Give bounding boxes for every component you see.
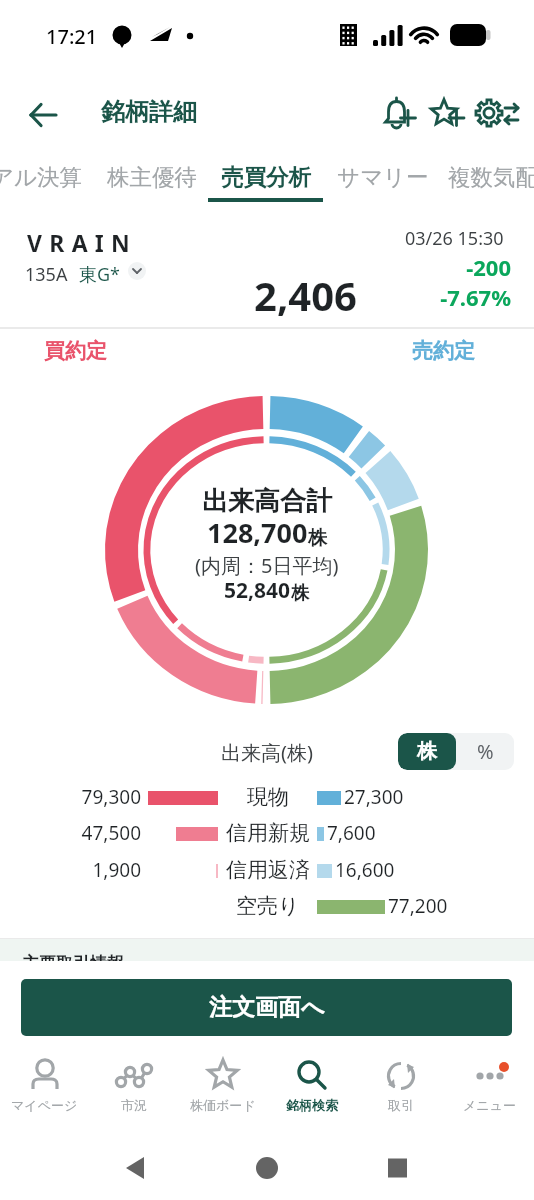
- staticText: 1,900: [30, 857, 141, 883]
- button[interactable]: 市況: [89, 1050, 178, 1135]
- staticText: 株主優待: [107, 163, 197, 191]
- button[interactable]: アル決算: [0, 150, 83, 202]
- staticText: 売買分析: [221, 163, 311, 191]
- staticText: 複数気配: [448, 163, 534, 191]
- staticText: 銘柄検索: [286, 1097, 338, 1113]
- staticText: 売約定: [412, 338, 475, 364]
- staticText: %: [477, 738, 494, 765]
- button[interactable]: Back: [20, 89, 68, 137]
- button[interactable]: 注文画面へ: [21, 979, 512, 1036]
- button[interactable]: Add alert: [380, 93, 424, 137]
- staticText: 銘柄詳細: [101, 97, 197, 127]
- staticText: 市況: [121, 1097, 147, 1113]
- staticText: 出来高(株): [221, 739, 313, 766]
- staticText: メニュー: [463, 1097, 516, 1113]
- staticText: 135A: [25, 262, 68, 287]
- staticText: 信用新規: [226, 820, 310, 846]
- staticText: 77,200: [388, 893, 448, 919]
- button[interactable]: 銘柄検索: [267, 1050, 356, 1135]
- staticText: 現物: [247, 784, 289, 810]
- staticText: 株価ボード: [190, 1097, 256, 1113]
- staticText: 注文画面へ: [209, 993, 325, 1022]
- staticText: サマリー: [337, 163, 429, 191]
- button[interactable]: マイページ: [0, 1050, 89, 1135]
- button[interactable]: Add to watchlist: [429, 93, 473, 137]
- button[interactable]: 取引: [356, 1050, 445, 1135]
- staticText: VRAIN: [27, 227, 138, 258]
- staticText: 27,300: [344, 784, 404, 810]
- staticText: 買約定: [44, 338, 107, 364]
- staticText: 株: [417, 739, 437, 764]
- staticText: 79,300: [30, 784, 141, 810]
- staticText: 取引: [388, 1097, 414, 1113]
- staticText: 17:21: [46, 23, 98, 50]
- button[interactable]: Market menu: [128, 262, 146, 280]
- staticText: 信用返済: [226, 857, 310, 883]
- staticText: アル決算: [0, 163, 83, 191]
- staticText: 株: [308, 526, 327, 550]
- staticText: 128,700: [207, 514, 308, 551]
- staticText: 出来高合計: [202, 485, 332, 518]
- staticText: 東G*: [79, 262, 121, 287]
- staticText: (内周：5日平均): [195, 552, 339, 579]
- button[interactable]: メニュー: [445, 1050, 534, 1135]
- button[interactable]: 株価ボード: [178, 1050, 267, 1135]
- staticText: 株: [291, 582, 309, 605]
- button[interactable]: Settings: [475, 93, 519, 137]
- staticText: 47,500: [30, 820, 141, 846]
- button[interactable]: 株: [398, 733, 456, 770]
- staticText: -200: [400, 252, 511, 282]
- staticText: 空売り: [236, 893, 300, 919]
- staticText: 03/26 15:30: [405, 226, 504, 251]
- button[interactable]: 株主優待: [107, 150, 199, 202]
- staticText: 7,600: [327, 820, 376, 846]
- staticText: 16,600: [335, 857, 395, 883]
- staticText: 2,406: [254, 268, 357, 322]
- button[interactable]: 売買分析: [221, 150, 313, 202]
- staticText: -7.67%: [400, 282, 511, 312]
- button[interactable]: 複数気配: [448, 150, 534, 202]
- button[interactable]: サマリー: [337, 150, 429, 202]
- button[interactable]: %: [456, 733, 514, 770]
- staticText: マイページ: [11, 1097, 78, 1113]
- staticText: 52,840: [224, 576, 291, 605]
- staticText: 主要取引情報: [22, 953, 124, 974]
